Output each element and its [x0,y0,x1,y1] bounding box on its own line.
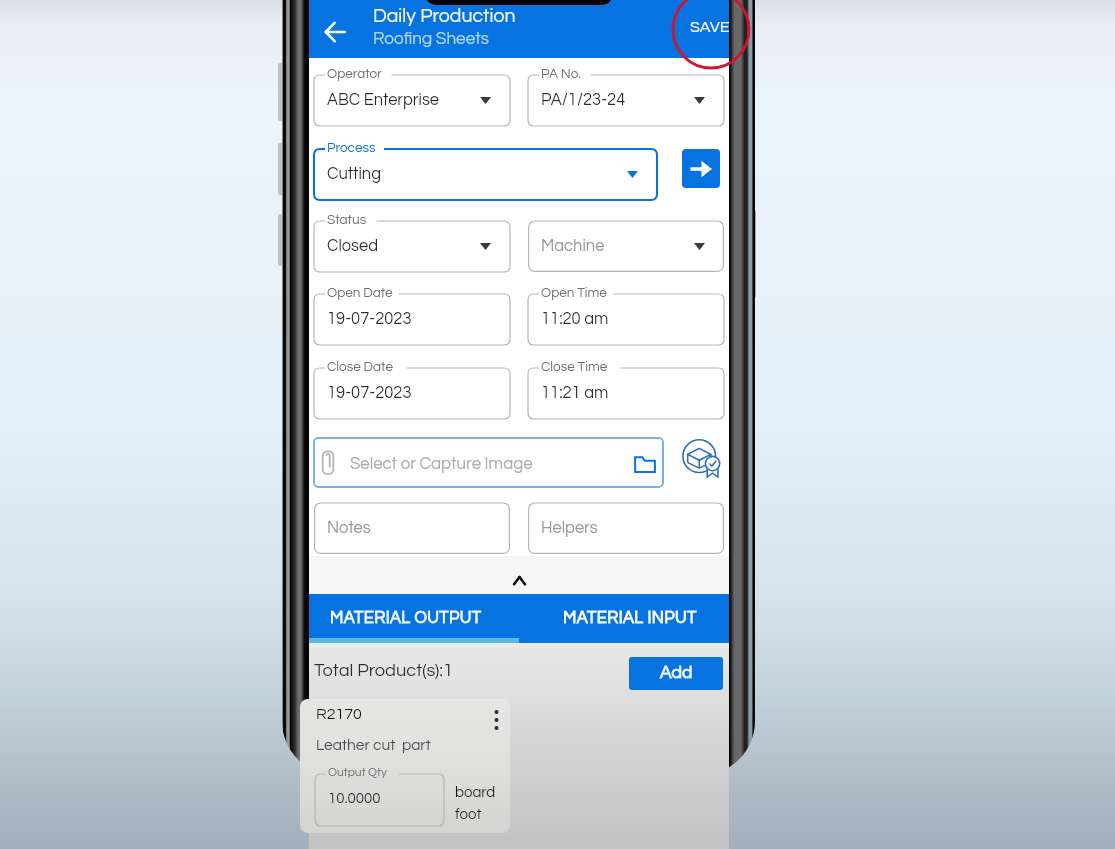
button[interactable]: Add [629,657,723,690]
staticText: 10.0000 [328,791,381,806]
staticText: Open Date [327,286,393,300]
button[interactable]: More options [485,704,507,736]
button[interactable]: Notes [314,496,510,554]
staticText: Select or Capture Image [350,455,533,472]
staticText: Process [327,141,376,155]
staticText: Output Qty [328,766,387,778]
staticText: Close Date [327,360,393,374]
staticText: PA/1/23-24 [541,91,626,108]
staticText: SAVE [690,19,730,35]
staticText: Notes [327,519,371,536]
staticText: Total Product(s):1 [314,661,454,680]
staticText: MATERIAL OUTPUT [330,609,482,626]
button[interactable]: Product details [675,431,729,485]
button[interactable]: Open Date [314,287,510,345]
button[interactable]: Close Date [314,361,510,419]
button[interactable]: Process [314,142,657,200]
button[interactable]: Machine [528,214,724,272]
button[interactable]: Status [314,214,510,272]
staticText: Helpers [541,519,598,536]
staticText: R2170 [316,706,362,722]
staticText: ABC Enterprise [327,91,440,108]
staticText: Machine [541,237,605,254]
button[interactable]: Output Qty [315,767,444,826]
button[interactable]: Operator [314,68,510,126]
staticText: Status [327,213,367,227]
staticText: 11:21 am [541,384,609,401]
button[interactable]: Helpers [528,496,724,554]
staticText: MATERIAL INPUT [563,609,697,626]
staticText: Closed [327,237,379,254]
button[interactable]: MATERIAL OUTPUT [309,594,519,638]
button[interactable]: Open Time [528,287,724,345]
staticText: 19-07-2023 [327,310,412,327]
staticText: Daily Production [373,6,516,26]
button[interactable]: SAVE [676,11,730,43]
staticText: Roofing Sheets [373,30,490,48]
staticText: Operator [327,67,382,81]
button[interactable]: Next [682,149,720,188]
button[interactable]: Collapse section [309,556,729,594]
staticText: Open Time [541,286,607,300]
button[interactable]: Back [313,11,357,55]
staticText: foot [455,807,482,822]
staticText: PA No. [541,67,582,81]
staticText: 11:20 am [541,310,609,327]
staticText: Cutting [327,165,382,182]
staticText: Add [660,664,693,682]
button[interactable]: PA No. [528,68,724,126]
staticText: 19-07-2023 [327,384,412,401]
staticText: board [455,785,496,800]
staticText: Leather cut part [316,737,431,753]
button[interactable]: R2170 [300,699,510,833]
button[interactable]: Select or Capture Image [313,437,664,488]
staticText: Close Time [541,360,608,374]
button[interactable]: Close Time [528,361,724,419]
button[interactable]: MATERIAL INPUT [519,594,729,638]
